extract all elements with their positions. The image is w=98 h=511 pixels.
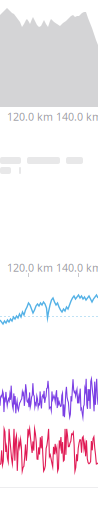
staticText: 140.0 km (56, 109, 98, 124)
staticText: 140.0 km (56, 260, 98, 275)
staticText: 120.0 km (7, 260, 53, 275)
staticText: 120.0 km (7, 109, 53, 124)
